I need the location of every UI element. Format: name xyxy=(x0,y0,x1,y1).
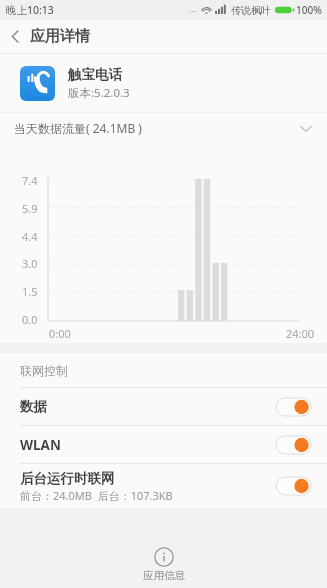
staticText: 100% xyxy=(296,3,322,17)
staticText: 7.4 xyxy=(22,173,38,188)
staticText: 0:00 xyxy=(49,326,71,341)
staticText: 数据 xyxy=(20,398,47,415)
button[interactable]: Toggle 数据 xyxy=(276,398,311,416)
staticText: 前台：24.0MB 后台：107.3KB xyxy=(20,488,173,503)
staticText: 应用详情 xyxy=(30,27,90,46)
staticText: 3.0 xyxy=(22,256,38,271)
staticText: WLAN xyxy=(20,436,61,454)
staticText: 联网控制 xyxy=(20,363,68,378)
button[interactable]: 应用信息 xyxy=(139,543,189,586)
staticText: 当天数据流量( 24.1MB ) xyxy=(14,120,142,136)
staticText: 版本:5.2.0.3 xyxy=(68,85,130,101)
staticText: 应用信息 xyxy=(143,569,185,582)
staticText: 5.9 xyxy=(22,201,38,216)
button[interactable]: 后台运行时联网 xyxy=(0,464,327,508)
staticText: 1.5 xyxy=(22,284,38,299)
button[interactable]: WLAN xyxy=(0,426,327,463)
staticText: 传说枫叶 xyxy=(231,4,271,17)
button[interactable]: Toggle 后台运行时联网 xyxy=(276,477,311,495)
button[interactable]: Back xyxy=(0,20,30,53)
staticText: 24:00 xyxy=(286,326,315,341)
staticText: 触宝电话 xyxy=(68,66,122,83)
staticText: 0.0 xyxy=(22,312,38,327)
button[interactable]: 触宝电话 xyxy=(0,54,327,112)
staticText: 晚上10:13 xyxy=(6,3,54,17)
staticText: 后台运行时联网 xyxy=(20,470,115,487)
button[interactable]: 当天数据流量( 24.1MB ) xyxy=(0,113,327,143)
staticText: 4.4 xyxy=(22,229,38,244)
button[interactable]: Toggle WLAN xyxy=(276,436,311,454)
button[interactable]: 数据 xyxy=(0,388,327,425)
